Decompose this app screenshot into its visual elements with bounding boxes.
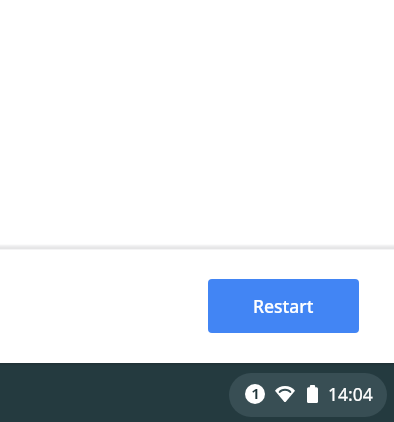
other: Battery full [307, 385, 318, 403]
staticText: 14:04 [328, 382, 373, 406]
button[interactable]: Restart [208, 279, 359, 333]
other: Wi-Fi [275, 386, 295, 402]
other: 1 notification [245, 384, 265, 404]
staticText: 1 [251, 383, 260, 403]
staticText: Restart [253, 294, 314, 318]
button[interactable]: System status tray, 14:04 [229, 373, 387, 417]
